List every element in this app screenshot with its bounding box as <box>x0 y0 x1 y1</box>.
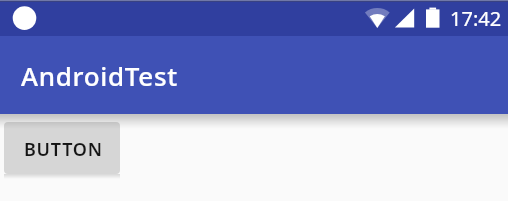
staticText: BUTTON <box>24 137 103 162</box>
staticText: 17:42 <box>450 5 502 32</box>
button[interactable]: BUTTON <box>4 122 120 174</box>
staticText: AndroidTest <box>21 58 178 93</box>
